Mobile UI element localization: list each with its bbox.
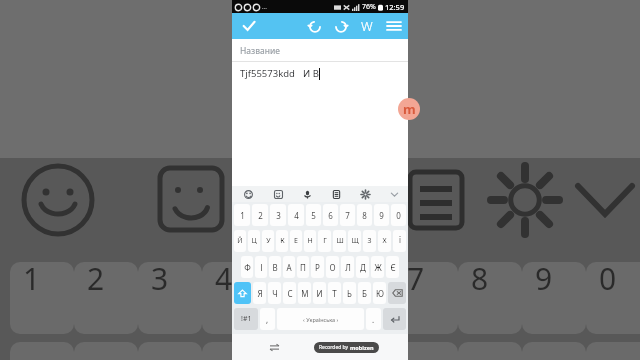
staticText: Ш [336,236,344,246]
button[interactable]: Format [354,13,380,39]
staticText: 4 [215,258,233,298]
button[interactable]: З [363,230,376,252]
button[interactable]: Ю [373,282,386,304]
button[interactable]: 1 [234,204,250,226]
button[interactable]: Ж [371,256,384,278]
button[interactable]: 3 [270,204,286,226]
button[interactable]: Undo [302,13,328,39]
button[interactable]: 6 [323,204,338,226]
button[interactable]: !#1 [234,308,258,330]
button[interactable]: Г [318,230,331,252]
button[interactable]: Emoji [240,186,256,202]
staticText: С [287,288,293,299]
button[interactable]: , [260,308,275,330]
button[interactable]: Ф [241,256,253,278]
staticText: 1 [23,258,41,298]
staticText: Р [315,262,320,273]
staticText: 2 [87,258,105,298]
staticText: Ц [251,236,257,246]
button[interactable]: Х [378,230,391,252]
staticText: Название [240,45,280,57]
staticText: Tjf55573kdd [240,67,295,80]
staticText: Ж [374,262,382,273]
button[interactable]: . [366,308,381,330]
button[interactable]: Б [358,282,371,304]
button[interactable]: Menu [380,13,408,39]
button[interactable]: 5 [306,204,321,226]
button[interactable]: Keyboard settings [357,186,373,202]
button[interactable]: Д [356,256,369,278]
staticText: 4 [294,210,299,221]
button[interactable]: Щ [348,230,361,252]
button[interactable]: Ч [268,282,281,304]
staticText: 2 [258,210,263,221]
staticText: В [272,262,278,273]
staticText: . [372,314,375,325]
staticText: 3 [151,258,169,298]
button[interactable]: 7 [340,204,355,226]
button[interactable]: Clipboard [328,186,344,202]
button[interactable]: Redo [328,13,354,39]
staticText: Г [323,236,327,246]
staticText: 6 [328,210,333,221]
button[interactable]: Switch keyboard [266,339,282,355]
button[interactable]: 2 [252,204,268,226]
staticText: 5 [311,210,316,221]
staticText: Й [237,236,243,246]
staticText: ... [262,3,267,11]
button[interactable]: Р [311,256,324,278]
button[interactable]: Й [234,230,246,252]
button[interactable]: Enter [383,308,406,330]
button[interactable]: И [313,282,326,304]
button[interactable]: Н [304,230,316,252]
button[interactable]: 4 [288,204,304,226]
button[interactable]: Я [253,282,266,304]
button[interactable]: Ц [248,230,260,252]
button[interactable]: Stickers [270,186,286,202]
button[interactable]: О [326,256,339,278]
button[interactable]: 0 [391,204,406,226]
button[interactable]: ‹ Українська › [277,308,364,330]
button[interactable]: А [283,256,295,278]
button[interactable]: Л [341,256,354,278]
button[interactable]: Backspace [388,282,406,304]
staticText: Ф [244,262,251,273]
button[interactable]: Ш [333,230,346,252]
staticText: І [260,262,263,273]
staticText: А [286,262,292,273]
button[interactable]: М [298,282,311,304]
staticText: Є [390,262,396,273]
button[interactable]: 9 [374,204,389,226]
staticText: Щ [351,236,359,246]
button[interactable]: П [297,256,309,278]
button[interactable]: Voice input [299,186,315,202]
staticText: W [361,17,373,35]
staticText: Н [307,236,313,246]
button[interactable]: Shift [234,282,251,304]
staticText: К [280,236,285,246]
button[interactable]: С [283,282,296,304]
button[interactable]: Ь [343,282,356,304]
button[interactable]: В [269,256,281,278]
button[interactable]: Ї [393,230,406,252]
button[interactable]: 8 [357,204,372,226]
staticText: 8 [471,258,489,298]
staticText: 8 [362,210,367,221]
staticText: Д [360,262,366,273]
staticText: 0 [396,210,401,221]
button[interactable]: Assistant [398,98,420,120]
staticText: 1 [240,210,245,221]
button[interactable]: Є [386,256,399,278]
button[interactable]: У [262,230,274,252]
staticText: Ю [376,288,384,299]
button[interactable]: More [386,186,402,202]
button[interactable]: І [255,256,267,278]
staticText: 7 [345,210,350,221]
staticText: З [367,236,372,246]
staticText: 7 [407,258,425,298]
button[interactable]: Save [232,13,266,39]
button[interactable]: Е [290,230,302,252]
staticText: О [329,262,336,273]
button[interactable]: К [276,230,288,252]
button[interactable]: Т [328,282,341,304]
